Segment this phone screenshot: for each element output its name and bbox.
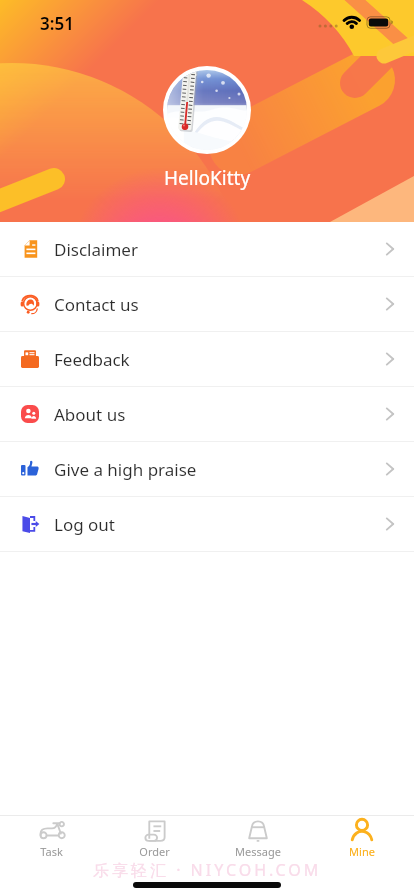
- button[interactable]: Contact us: [0, 277, 414, 332]
- staticText: Give a high praise: [54, 458, 197, 481]
- staticText: 乐享轻汇 · NIYCOH.COM: [93, 859, 322, 881]
- button[interactable]: Disclaimer: [0, 222, 414, 277]
- staticText: About us: [54, 403, 126, 426]
- button[interactable]: Order: [103, 815, 206, 896]
- button[interactable]: Profile photo: [163, 66, 251, 154]
- button[interactable]: Feedback: [0, 332, 414, 387]
- staticText: Task: [40, 844, 63, 859]
- staticText: Disclaimer: [54, 238, 138, 261]
- staticText: Contact us: [54, 293, 139, 316]
- button[interactable]: About us: [0, 387, 414, 442]
- staticText: Message: [235, 844, 281, 859]
- staticText: Log out: [54, 513, 115, 536]
- staticText: Order: [139, 844, 170, 859]
- staticText: 3:51: [40, 12, 74, 35]
- button[interactable]: Give a high praise: [0, 442, 414, 497]
- button[interactable]: Message: [206, 815, 310, 896]
- staticText: Feedback: [54, 348, 130, 371]
- button[interactable]: Mine: [310, 815, 414, 896]
- button[interactable]: Task: [0, 815, 103, 896]
- button[interactable]: Log out: [0, 497, 414, 552]
- staticText: Mine: [349, 844, 375, 859]
- staticText: HelloKitty: [164, 165, 251, 191]
